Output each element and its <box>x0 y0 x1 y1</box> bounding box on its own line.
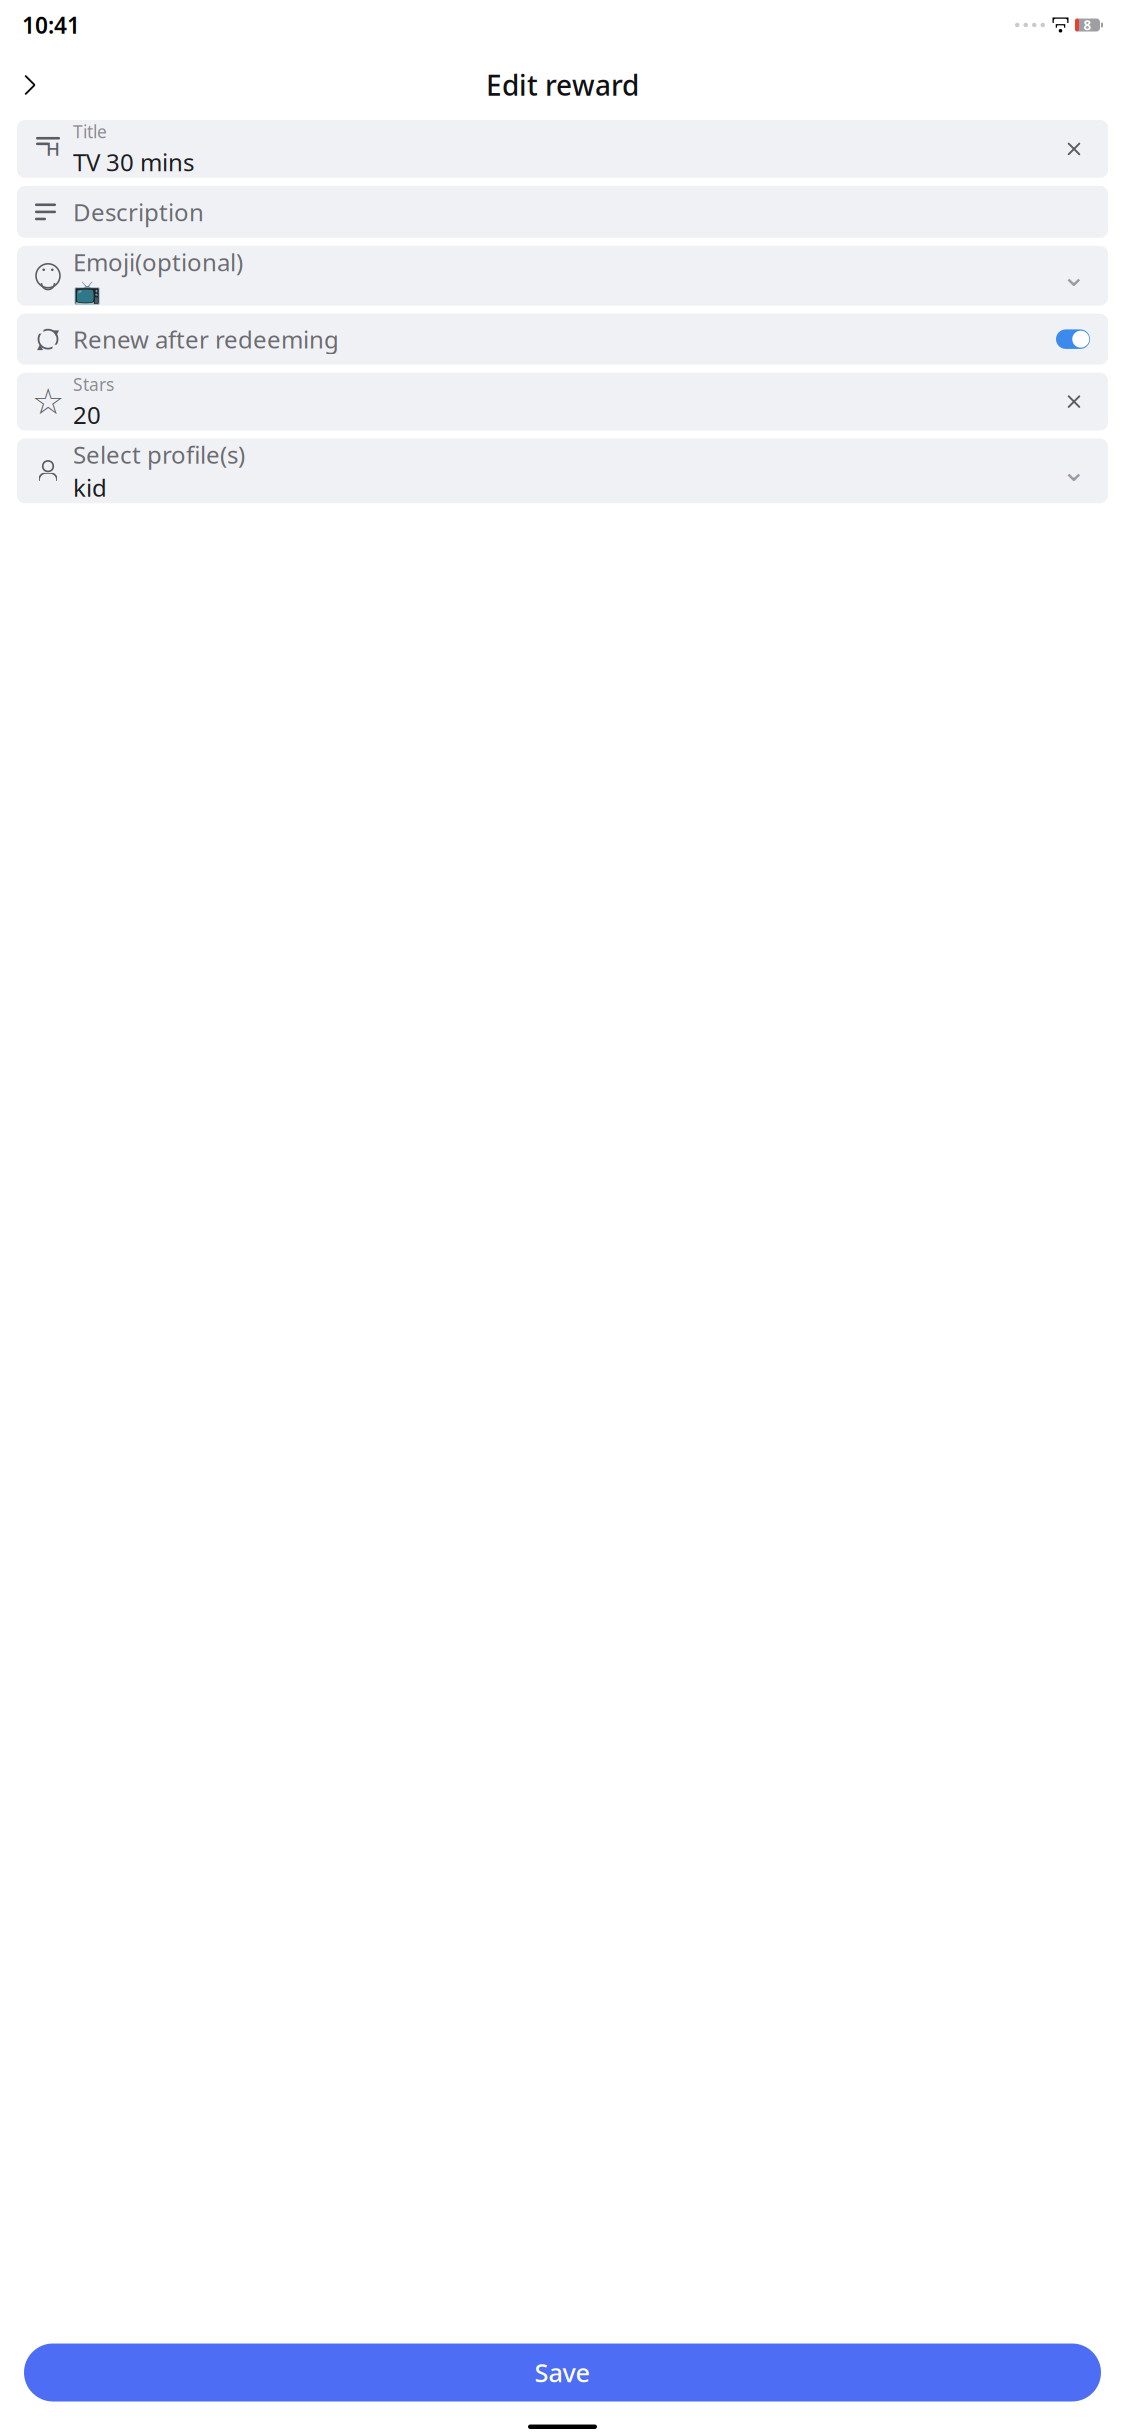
staticText: ▴ <box>37 339 43 353</box>
staticText: 10:41 <box>22 10 80 40</box>
button[interactable]: ▾ <box>17 314 1108 365</box>
staticText: ⌄ <box>1061 259 1086 292</box>
staticText: ⌄ <box>1061 454 1086 488</box>
button[interactable]: Clear stars <box>1058 386 1090 418</box>
button[interactable]: Select profile(s) <box>17 439 1108 503</box>
staticText: Stars <box>73 373 114 396</box>
button[interactable]: ☆ <box>17 373 1108 431</box>
staticText: Emoji(optional) <box>73 246 243 278</box>
staticText: Select profile(s) <box>73 439 245 470</box>
staticText: Edit reward <box>486 66 639 104</box>
staticText: ▾ <box>53 325 59 339</box>
staticText: 8 <box>1083 16 1091 34</box>
button[interactable]: Description <box>17 186 1108 238</box>
staticText: Title <box>73 120 107 143</box>
button[interactable]: Back <box>8 63 52 107</box>
staticText: Description <box>73 196 204 228</box>
button[interactable]: Emoji(optional) <box>17 246 1108 306</box>
staticText: Renew after redeeming <box>73 323 339 355</box>
button[interactable]: Clear title <box>1058 133 1090 165</box>
staticText: 📺 <box>73 280 101 306</box>
staticText: kid <box>73 471 107 503</box>
staticText: TV 30 mins <box>73 146 194 178</box>
staticText: H <box>46 136 60 161</box>
button[interactable]: H <box>17 120 1108 178</box>
staticText: ☆ <box>32 381 64 422</box>
staticText: Save <box>534 2356 590 2389</box>
staticText: 20 <box>73 399 101 431</box>
button[interactable]: Save <box>24 2343 1101 2401</box>
